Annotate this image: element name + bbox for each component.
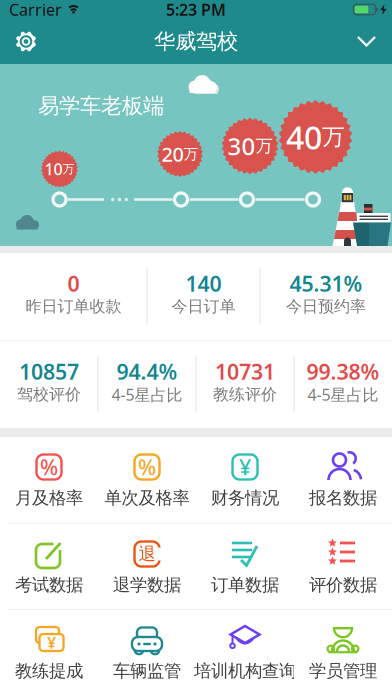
staticText: 10731	[215, 357, 275, 386]
button[interactable]: 退	[98, 524, 196, 609]
staticText: 昨日订单收款	[25, 297, 121, 316]
staticText: 单次及格率	[104, 487, 189, 509]
staticText: 财务情况	[211, 487, 279, 509]
button[interactable]: Collapse	[357, 36, 392, 47]
staticText: 订单数据	[211, 574, 279, 596]
staticText: 45.31%	[289, 269, 362, 298]
staticText: 10857	[19, 357, 79, 386]
staticText: 教练提成	[15, 660, 83, 682]
staticText: 万	[62, 162, 74, 176]
button[interactable]: ¥	[0, 610, 98, 696]
button[interactable]: ¥	[196, 437, 294, 523]
staticText: ¥	[47, 632, 56, 653]
button[interactable]: 报名数据	[294, 437, 392, 523]
staticText: 万	[183, 145, 198, 163]
staticText: 学员管理	[309, 660, 377, 682]
button[interactable]: 考试数据	[0, 524, 98, 609]
staticText: 考试数据	[15, 574, 83, 596]
staticText: 报名数据	[309, 487, 377, 509]
button[interactable]: 订单数据	[196, 524, 294, 609]
staticText: 教练评价	[213, 385, 277, 404]
staticText: 0	[67, 269, 79, 298]
staticText: 退学数据	[113, 574, 181, 596]
staticText: %	[138, 453, 156, 481]
button[interactable]: 车辆监管	[98, 610, 196, 696]
staticText: 4-5星占比	[307, 384, 378, 405]
staticText: 易学车老板端	[38, 93, 164, 119]
staticText: 94.4%	[116, 357, 177, 386]
staticText: 今日预约率	[286, 297, 366, 316]
button[interactable]: Settings	[0, 30, 37, 52]
button[interactable]: %	[0, 437, 98, 523]
staticText: 驾校评价	[17, 385, 81, 404]
staticText: 培训机构查询	[194, 660, 296, 682]
staticText: 99.38%	[306, 357, 379, 386]
staticText: 140	[185, 269, 221, 298]
staticText: 华威驾校	[154, 28, 238, 55]
staticText: 40	[286, 116, 322, 158]
button[interactable]: 评价数据	[294, 524, 392, 609]
button[interactable]: 学员管理	[294, 610, 392, 696]
staticText: Carrier	[9, 0, 62, 20]
staticText: 月及格率	[15, 487, 83, 509]
staticText: 今日订单	[171, 297, 235, 316]
staticText: 万	[255, 135, 272, 157]
staticText: ¥	[239, 453, 251, 481]
button[interactable]: %	[98, 437, 196, 523]
staticText: 4-5星占比	[111, 384, 182, 405]
staticText: 10	[44, 158, 62, 180]
button[interactable]: 培训机构查询	[196, 610, 294, 696]
staticText: %	[40, 453, 58, 481]
staticText: 5:23 PM	[166, 0, 226, 20]
staticText: 20	[161, 141, 183, 167]
staticText: 退	[138, 543, 155, 565]
staticText: 评价数据	[309, 574, 377, 596]
staticText: 30	[227, 130, 255, 162]
staticText: 车辆监管	[113, 660, 181, 682]
staticText: 万	[322, 123, 345, 151]
